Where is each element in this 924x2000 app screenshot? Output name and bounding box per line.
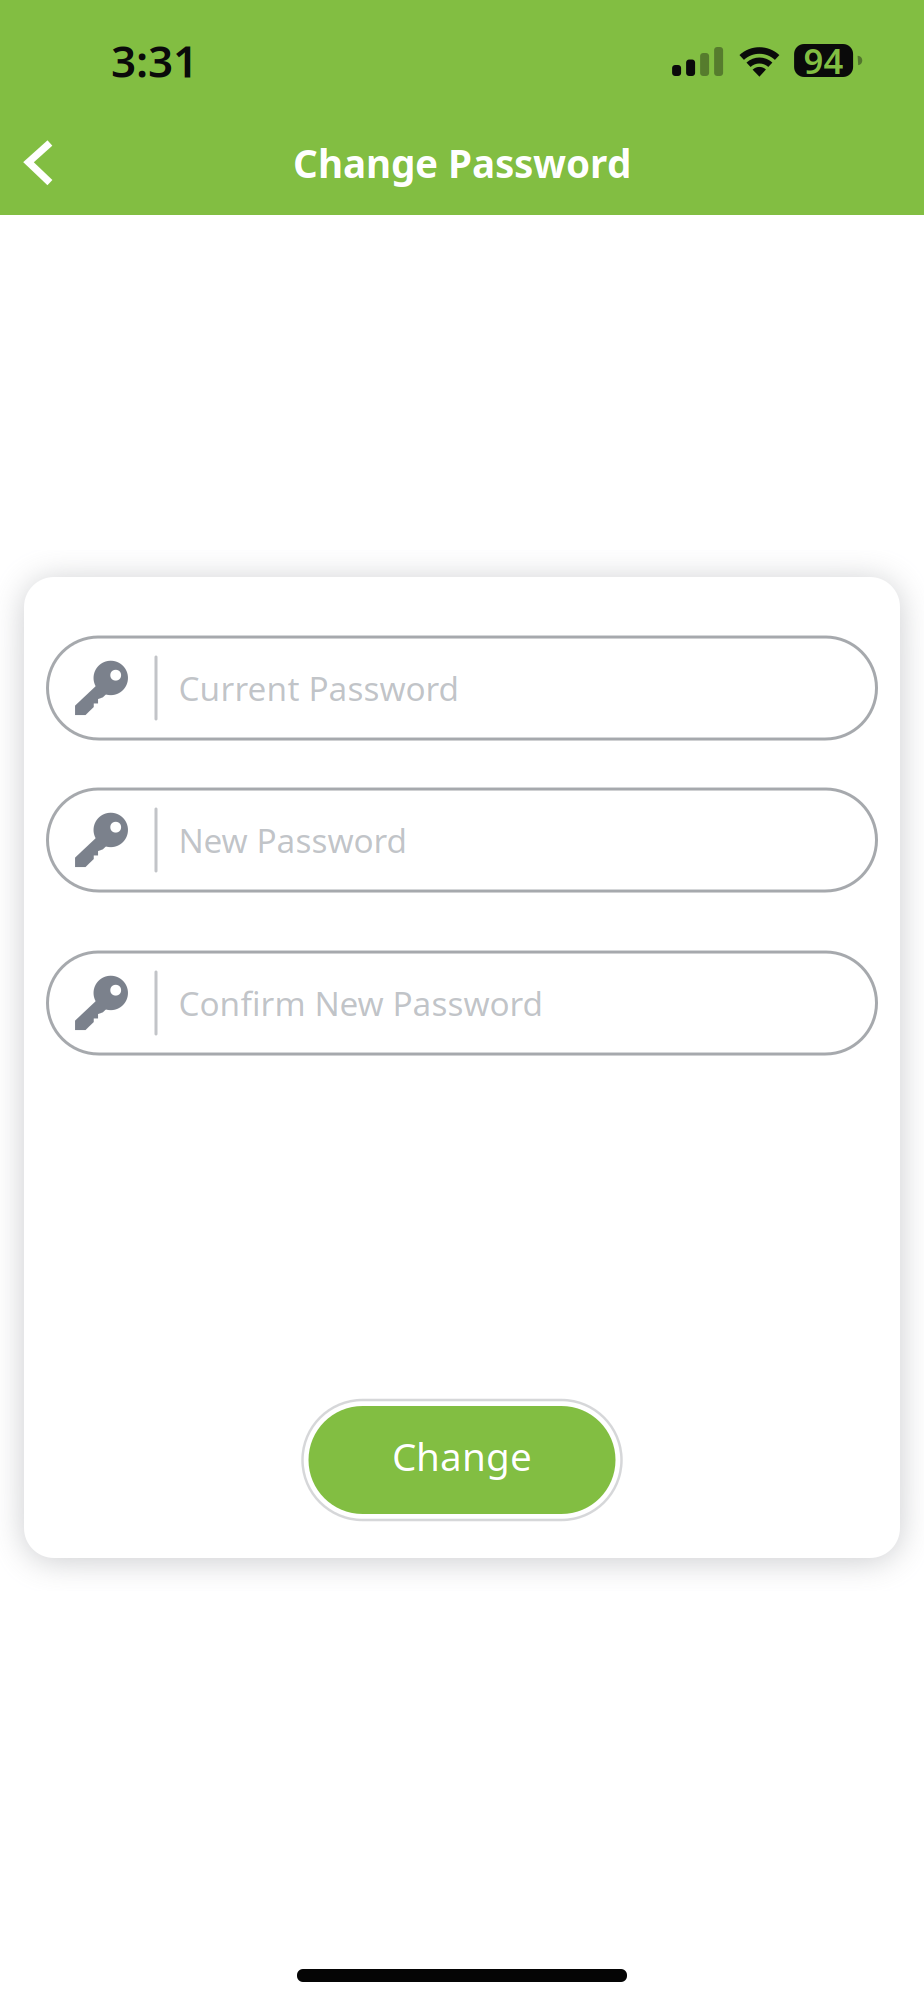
button[interactable]: Change	[302, 1400, 621, 1520]
staticText: Change Password	[293, 137, 631, 189]
staticText: Change	[392, 1430, 532, 1482]
staticText: 94	[804, 37, 844, 83]
staticText: Confirm New Password	[178, 981, 543, 1025]
staticText: Current Password	[178, 666, 459, 710]
button[interactable]: Confirm New Password	[47, 952, 876, 1054]
button[interactable]: Back	[0, 121, 78, 215]
staticText: 3:31	[111, 31, 198, 90]
button[interactable]: New Password	[47, 789, 876, 891]
staticText: New Password	[178, 818, 407, 862]
button[interactable]: Current Password	[47, 637, 876, 739]
